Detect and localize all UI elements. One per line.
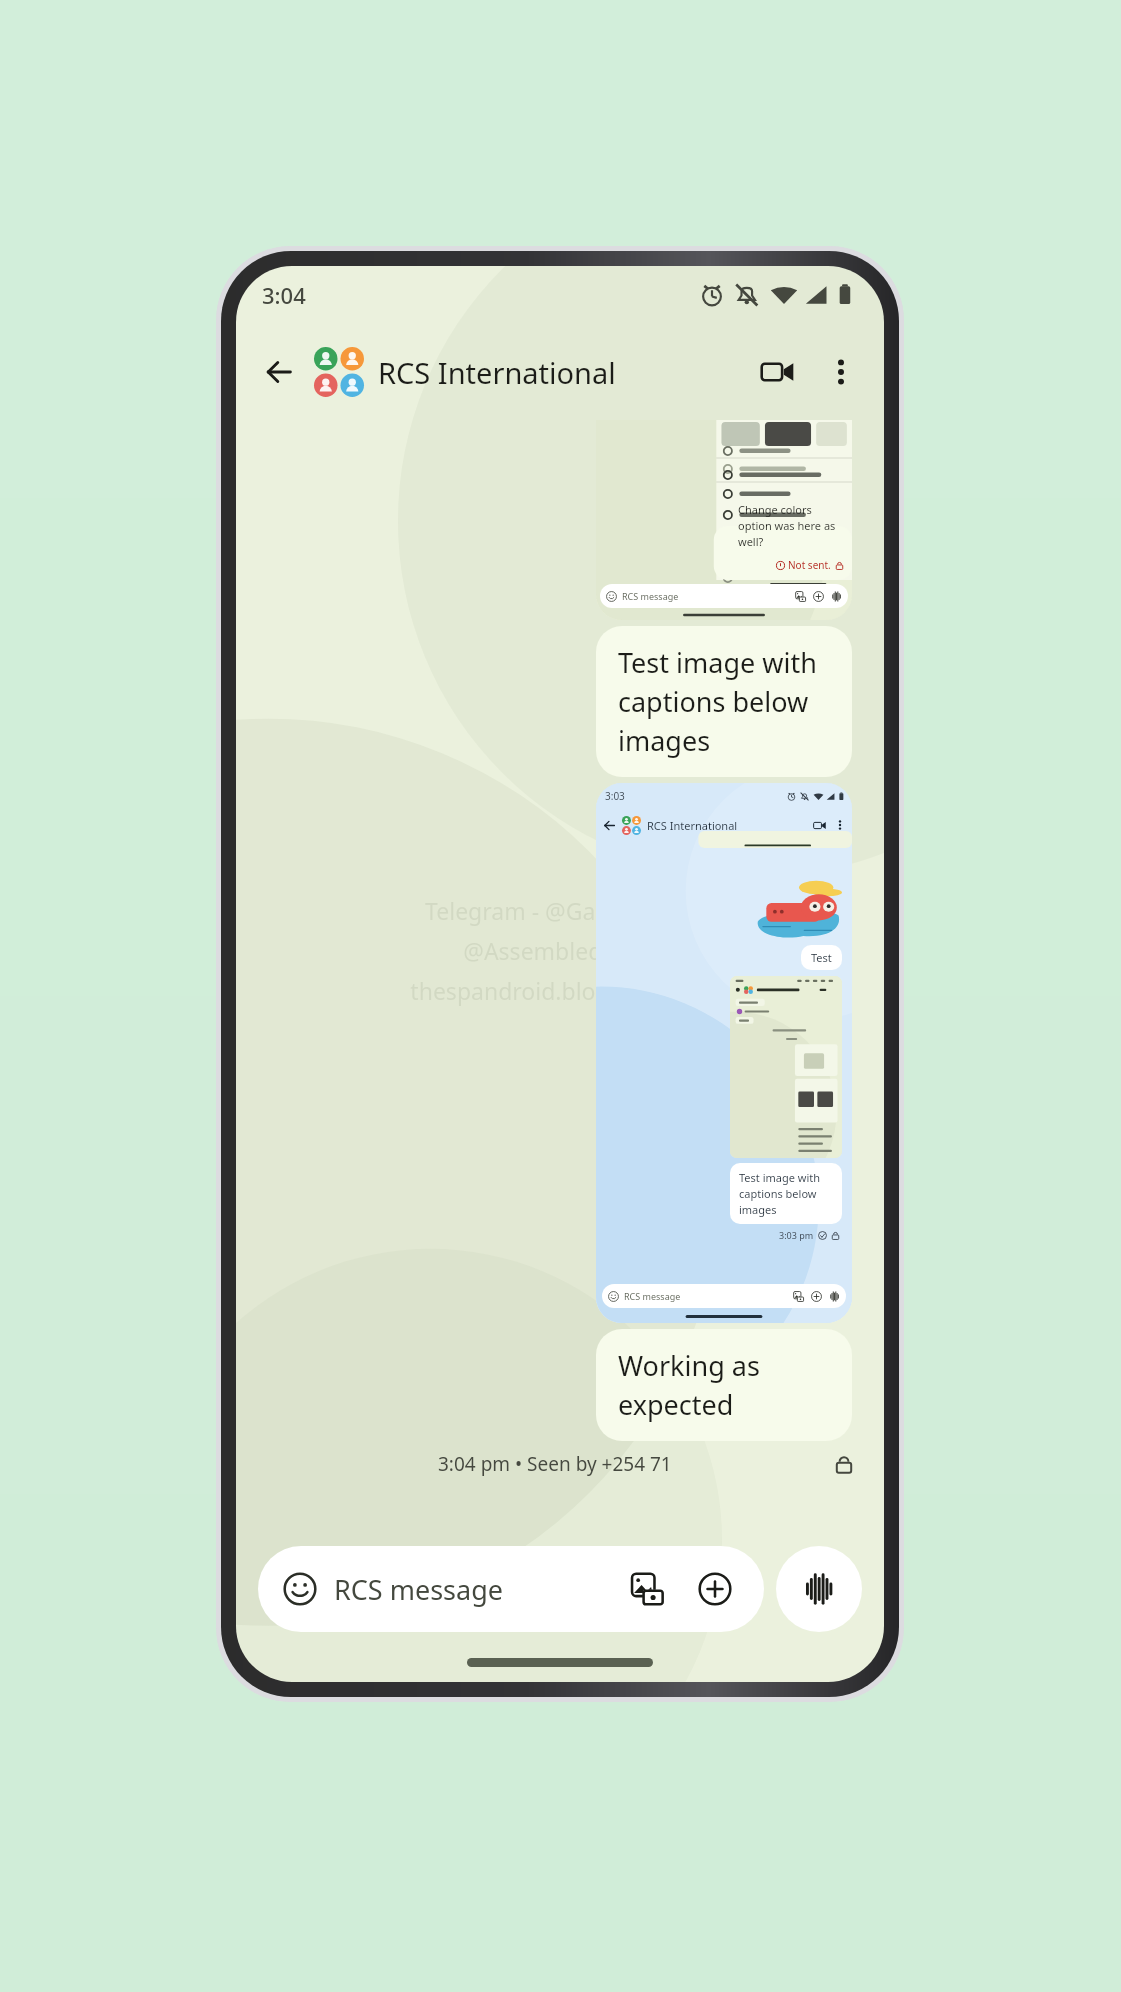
staticText: Test image with captions below images [739, 1170, 833, 1217]
staticText: 3:03 pm [779, 1229, 814, 1241]
staticText: Not sent. [788, 558, 831, 572]
staticText: 3:04 pm • Seen by +254 71 [438, 1451, 672, 1477]
button[interactable]: Emoji [280, 1569, 320, 1609]
staticText: Test image with captions below images [618, 644, 830, 759]
staticText: 3:04 [262, 280, 306, 310]
staticText: @Assembledebug [463, 935, 658, 966]
button[interactable]: Attach [692, 1566, 738, 1612]
button[interactable]: More options [814, 345, 868, 399]
staticText: Working as expected [618, 1347, 830, 1423]
button[interactable]: Change colors option was here as well? [596, 420, 852, 620]
button[interactable]: Test image with captions below images [596, 626, 852, 777]
staticText: RCS message [624, 1290, 681, 1302]
staticText: RCS International [378, 353, 616, 392]
button[interactable]: Back [250, 343, 308, 401]
staticText: Change colors option was here as well? [738, 502, 844, 549]
staticText: 3:03 [605, 789, 625, 803]
staticText: RCS message [622, 590, 679, 602]
staticText: thespandroid.blogspot.com [410, 975, 710, 1006]
staticText: Test [811, 950, 832, 965]
button[interactable]: Working as expected [596, 1329, 852, 1441]
button[interactable]: Video call [748, 343, 806, 401]
staticText: RCS message [334, 1571, 504, 1608]
button[interactable]: Voice message [776, 1546, 862, 1632]
button[interactable]: Gallery [624, 1566, 670, 1612]
button[interactable]: RCS International [314, 347, 748, 397]
button[interactable]: Emoji [258, 1546, 764, 1632]
staticText: RCS International [647, 818, 738, 833]
button[interactable]: 3:03 [596, 783, 852, 1323]
staticText: Telegram - @GappsLeaks [425, 895, 696, 926]
